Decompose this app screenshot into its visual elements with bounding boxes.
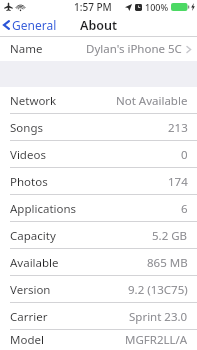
button[interactable]: Name — [0, 37, 197, 61]
staticText: Version — [10, 282, 51, 298]
button[interactable]: Model — [0, 330, 197, 350]
staticText: Videos — [10, 147, 46, 163]
staticText: 0 — [181, 147, 188, 163]
staticText: MGFR2LL/A — [125, 332, 188, 348]
staticText: Network — [10, 93, 57, 109]
staticText: Sprint 23.0 — [129, 309, 188, 325]
staticText: Carrier — [10, 309, 48, 325]
staticText: General — [12, 17, 57, 33]
staticText: 6 — [181, 201, 188, 217]
button[interactable]: General — [0, 15, 63, 35]
button[interactable]: Capacity — [0, 222, 197, 249]
staticText: 174 — [168, 174, 188, 190]
button[interactable]: Videos — [0, 141, 197, 168]
staticText: Applications — [10, 201, 77, 217]
staticText: 865 MB — [147, 255, 188, 271]
staticText: Dylan's iPhone 5C — [86, 41, 182, 57]
staticText: Songs — [10, 120, 43, 136]
staticText: 213 — [168, 120, 188, 136]
staticText: 100% — [145, 1, 169, 13]
staticText: Photos — [10, 174, 48, 190]
button[interactable]: Version — [0, 276, 197, 303]
staticText: About — [80, 17, 117, 34]
staticText: Model — [10, 332, 44, 348]
button[interactable]: Applications — [0, 195, 197, 222]
staticText: 5.2 GB — [152, 228, 188, 244]
button[interactable]: Songs — [0, 114, 197, 141]
staticText: Available — [10, 255, 59, 271]
button[interactable]: Photos — [0, 168, 197, 195]
staticText: Name — [10, 41, 43, 57]
staticText: 9.2 (13C75) — [128, 282, 188, 298]
button[interactable]: Network — [0, 87, 197, 114]
button[interactable]: Carrier — [0, 303, 197, 330]
staticText: Not Available — [116, 93, 188, 109]
other: Open — [186, 45, 191, 54]
button[interactable]: Available — [0, 249, 197, 276]
staticText: 1:57 PM — [74, 0, 112, 13]
staticText: Capacity — [10, 228, 56, 244]
